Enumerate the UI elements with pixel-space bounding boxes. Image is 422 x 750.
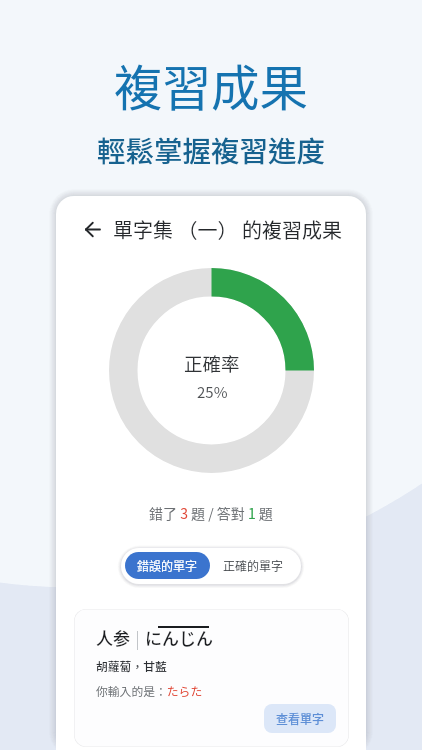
staticText: 你輸入的是：たらた: [96, 682, 203, 699]
button[interactable]: 錯誤的單字: [125, 552, 210, 579]
staticText: 錯了 3 題 / 答對 1 題: [149, 503, 273, 523]
staticText: 複習成果: [114, 50, 309, 120]
staticText: にんじん: [145, 625, 213, 650]
staticText: 胡蘿蔔，甘藍: [96, 657, 167, 674]
staticText: 正確的單字: [223, 557, 284, 574]
staticText: 正確率: [184, 350, 240, 377]
button[interactable]: 查看單字: [264, 704, 336, 733]
staticText: 錯誤的單字: [137, 557, 198, 574]
button[interactable]: 正確的單字: [210, 552, 297, 579]
staticText: 單字集 （一） 的複習成果: [113, 215, 342, 244]
staticText: 輕鬆掌握複習進度: [97, 129, 326, 170]
staticText: 25%: [197, 381, 228, 403]
staticText: 人参: [96, 625, 130, 650]
staticText: 查看單字: [276, 710, 325, 727]
button[interactable]: Back: [75, 212, 109, 246]
